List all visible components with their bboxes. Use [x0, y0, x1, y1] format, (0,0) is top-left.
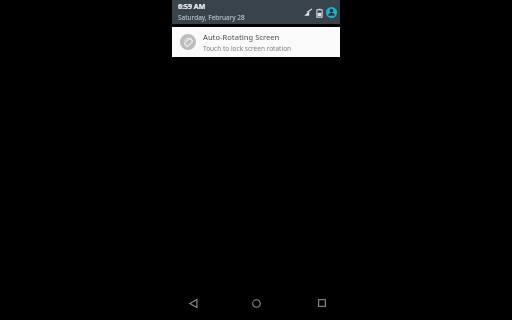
button[interactable]: Auto-Rotating Screen: [172, 27, 340, 57]
staticText: Saturday, February 28: [178, 13, 245, 22]
staticText: 6:59 AM: [178, 2, 206, 12]
button[interactable]: Signal status: [303, 8, 313, 18]
staticText: Auto-Rotating Screen: [203, 32, 280, 42]
button[interactable]: Home: [236, 286, 276, 320]
button[interactable]: User profile: [326, 7, 337, 18]
button[interactable]: Recent apps: [302, 286, 342, 320]
staticText: Touch to lock screen rotation: [203, 44, 292, 53]
button[interactable]: Battery status: [316, 8, 323, 18]
button[interactable]: Back: [173, 286, 213, 320]
